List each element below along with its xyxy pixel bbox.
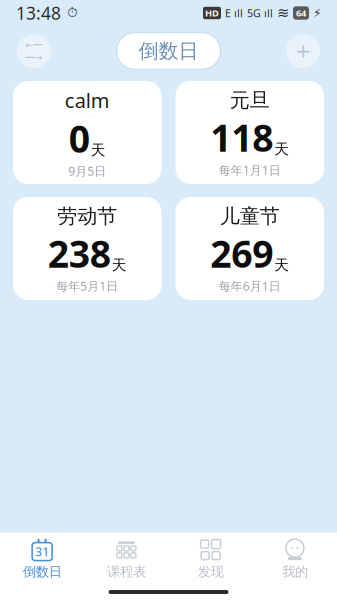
staticText: 64 [296, 7, 306, 19]
staticText: ≋ [277, 5, 289, 21]
staticText: 238 [48, 228, 111, 278]
button[interactable]: 劳动节 [13, 197, 161, 300]
staticText: 每年6月1日 [219, 278, 281, 294]
button[interactable]: 儿童节 [175, 197, 324, 300]
staticText: E ıll [225, 6, 243, 20]
staticText: → [34, 52, 42, 63]
staticText: 天 [274, 256, 289, 274]
staticText: 倒数日 [138, 39, 198, 63]
staticText: 天 [91, 141, 106, 159]
staticText: 倒数日 [23, 564, 62, 580]
staticText: 我的 [282, 564, 308, 580]
button[interactable]: calm [13, 81, 161, 184]
button[interactable]: 我的 [253, 533, 337, 584]
staticText: 天 [112, 256, 127, 274]
staticText: 5G ıll [247, 6, 273, 20]
button[interactable]: 课程表 [84, 533, 168, 584]
staticText: 元旦 [230, 88, 270, 113]
staticText: ⚡︎ [313, 6, 321, 20]
staticText: 118 [210, 112, 273, 162]
staticText: calm [65, 87, 110, 114]
staticText: 课程表 [107, 564, 146, 580]
button[interactable]: 31 [0, 533, 84, 584]
button[interactable]: 排序 [12, 29, 56, 73]
staticText: 每年5月1日 [56, 278, 118, 294]
staticText: 0 [69, 113, 90, 163]
staticText: 9月5日 [68, 163, 106, 179]
staticText: 13:48 [16, 1, 61, 24]
staticText: 劳动节 [57, 204, 117, 229]
button[interactable]: 添加 [281, 29, 325, 73]
staticText: HD [205, 7, 219, 19]
staticText: 269 [210, 228, 273, 278]
button[interactable]: 倒数日 [116, 33, 220, 69]
staticText: ← [25, 39, 33, 50]
staticText: + [296, 34, 310, 68]
staticText: 儿童节 [220, 204, 280, 229]
staticText: 31 [35, 544, 49, 560]
staticText: 每年1月1日 [219, 162, 281, 178]
staticText: ⏱ [61, 6, 77, 19]
button[interactable]: 元旦 [175, 81, 324, 184]
staticText: 天 [274, 140, 289, 158]
staticText: 发现 [198, 564, 224, 580]
button[interactable]: 发现 [168, 533, 253, 584]
